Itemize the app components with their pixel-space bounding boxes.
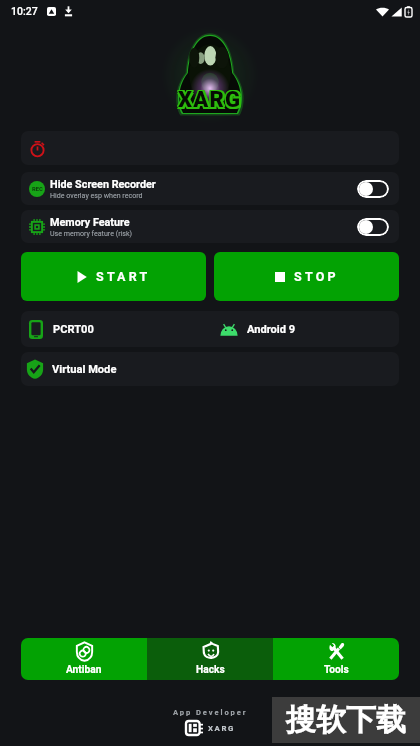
staticText: Hacks: [196, 664, 225, 676]
button[interactable]: Memory Feature: [21, 210, 399, 243]
staticText: XARG: [177, 89, 241, 115]
button[interactable]: START: [21, 252, 206, 301]
staticText: STOP: [294, 269, 339, 284]
staticText: Hide overlay esp when record: [50, 191, 143, 199]
staticText: XARG: [178, 86, 242, 112]
button[interactable]: Antiban: [21, 638, 147, 680]
button[interactable]: STOP: [214, 252, 399, 301]
staticText: Antiban: [66, 664, 102, 676]
staticText: Memory Feature: [50, 216, 130, 229]
staticText: XARG: [177, 86, 241, 112]
staticText: XARG: [180, 86, 244, 112]
staticText: XARG: [208, 724, 235, 733]
staticText: XARG: [180, 89, 244, 115]
staticText: Android 9: [247, 323, 296, 336]
staticText: Use memory feature (risk): [50, 229, 132, 237]
button[interactable]: Hacks: [147, 638, 273, 680]
button[interactable]: Toggle: [357, 218, 389, 236]
button[interactable]: PCRT00: [21, 311, 399, 347]
button[interactable]: Timer: [21, 131, 399, 165]
staticText: App Developer: [173, 708, 248, 717]
staticText: Virtual Mode: [52, 363, 117, 376]
button[interactable]: Tools: [273, 638, 399, 680]
staticText: 搜软下载: [286, 701, 406, 739]
staticText: REC: [32, 186, 43, 193]
staticText: START: [96, 269, 151, 284]
staticText: XARG: [178, 87, 242, 113]
staticText: Tools: [324, 664, 349, 676]
staticText: Hide Screen Recorder: [50, 178, 156, 191]
button[interactable]: Virtual Mode: [21, 352, 399, 386]
staticText: PCRT00: [53, 323, 94, 336]
button[interactable]: REC: [21, 172, 399, 205]
staticText: XARG: [180, 87, 244, 113]
button[interactable]: Toggle: [357, 180, 389, 198]
staticText: XARG: [178, 89, 242, 115]
staticText: 10:27: [11, 5, 38, 17]
other: Timer: [29, 140, 46, 157]
staticText: XARG: [177, 87, 241, 113]
